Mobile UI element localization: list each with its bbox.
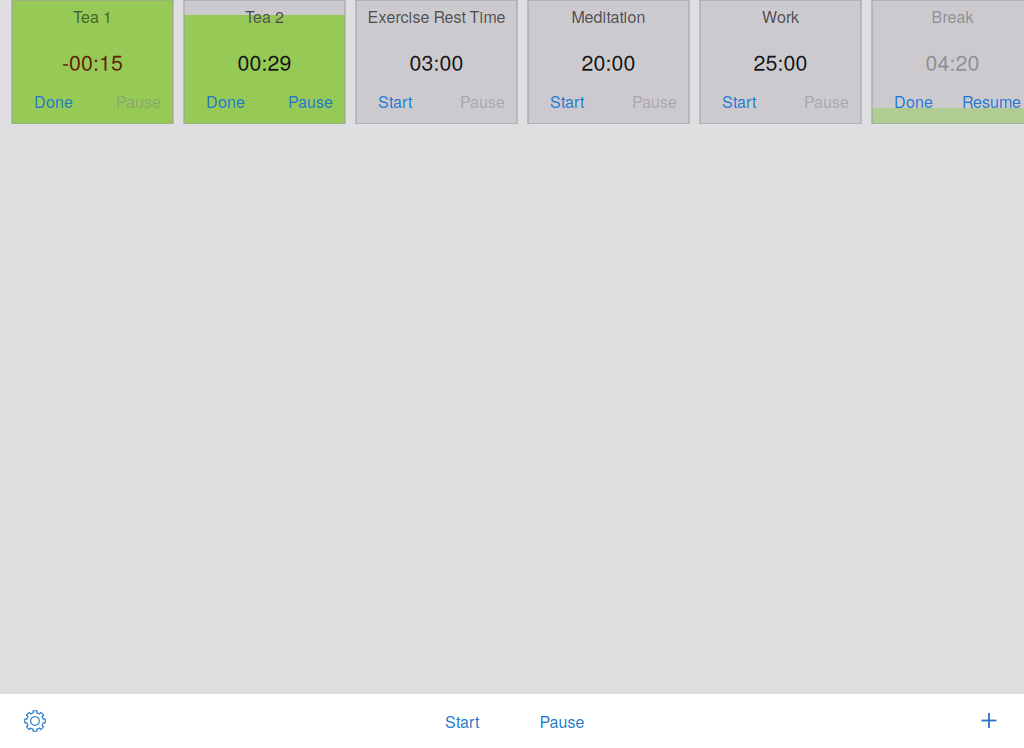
- staticText: Work: [762, 4, 799, 27]
- staticText: Done: [894, 89, 933, 112]
- button[interactable]: Start: [378, 89, 412, 112]
- staticText: Tea 1: [73, 4, 112, 27]
- staticText: 20:00: [581, 46, 635, 77]
- staticText: Meditation: [571, 4, 645, 27]
- button[interactable]: Settings: [0, 694, 70, 748]
- staticText: 25:00: [753, 46, 807, 77]
- staticText: -00:15: [62, 46, 123, 77]
- staticText: Pause: [288, 89, 333, 112]
- button[interactable]: Pause: [460, 89, 505, 112]
- button[interactable]: Start: [550, 89, 584, 112]
- button[interactable]: Pause: [632, 89, 677, 112]
- staticText: Resume: [962, 89, 1021, 112]
- button[interactable]: Pause: [804, 89, 849, 112]
- button[interactable]: Add timer: [954, 694, 1024, 748]
- button[interactable]: Pause: [526, 694, 598, 748]
- staticText: Pause: [116, 89, 161, 112]
- staticText: 00:29: [237, 46, 291, 77]
- button[interactable]: Pause: [116, 89, 161, 112]
- staticText: Exercise Rest Time: [367, 4, 505, 27]
- button[interactable]: Done: [206, 89, 245, 112]
- button[interactable]: Pause: [288, 89, 333, 112]
- staticText: Pause: [460, 89, 505, 112]
- staticText: Start: [550, 89, 584, 112]
- staticText: Start: [378, 89, 412, 112]
- staticText: 03:00: [409, 46, 463, 77]
- button[interactable]: Done: [894, 89, 933, 112]
- button[interactable]: Resume: [962, 89, 1021, 112]
- staticText: Pause: [632, 89, 677, 112]
- staticText: Break: [931, 4, 973, 27]
- staticText: Start: [722, 89, 756, 112]
- staticText: Done: [206, 89, 245, 112]
- button[interactable]: Start: [426, 694, 498, 748]
- button[interactable]: Done: [34, 89, 73, 112]
- staticText: 04:20: [925, 46, 979, 77]
- staticText: Pause: [804, 89, 849, 112]
- staticText: Tea 2: [245, 4, 284, 27]
- staticText: Pause: [539, 709, 584, 732]
- button[interactable]: Start: [722, 89, 756, 112]
- staticText: Start: [445, 709, 479, 732]
- staticText: Done: [34, 89, 73, 112]
